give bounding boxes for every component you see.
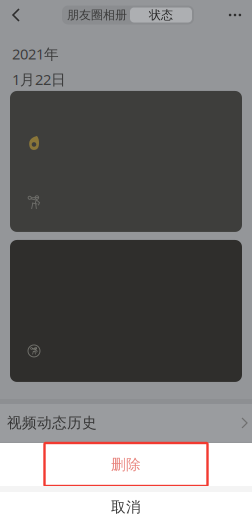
button[interactable]: 状态: [130, 7, 192, 22]
staticText: 2021年: [12, 44, 59, 63]
button[interactable]: More options: [221, 0, 249, 30]
button[interactable]: Back: [3, 0, 29, 30]
button[interactable]: 删除: [0, 443, 252, 486]
staticText: 状态: [149, 8, 173, 22]
staticText: 视频动态历史: [7, 414, 97, 432]
staticText: 1月22日: [12, 69, 66, 89]
button[interactable]: 视频动态历史: [0, 404, 252, 442]
staticText: 取消: [111, 498, 141, 515]
button[interactable]: 取消: [0, 492, 252, 515]
button[interactable]: 朋友圈相册: [64, 7, 130, 22]
staticText: 朋友圈相册: [67, 8, 127, 22]
staticText: 删除: [111, 455, 141, 473]
